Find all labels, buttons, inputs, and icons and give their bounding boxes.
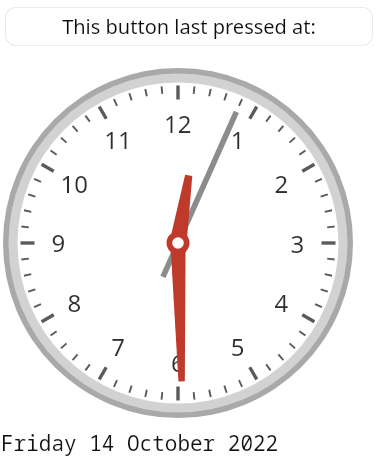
button[interactable]: This button last pressed at:	[5, 7, 373, 46]
other: Analog clock face	[0, 0, 378, 464]
staticText: This button last pressed at:	[62, 13, 316, 40]
staticText: Friday 14 October 2022	[1, 429, 279, 458]
